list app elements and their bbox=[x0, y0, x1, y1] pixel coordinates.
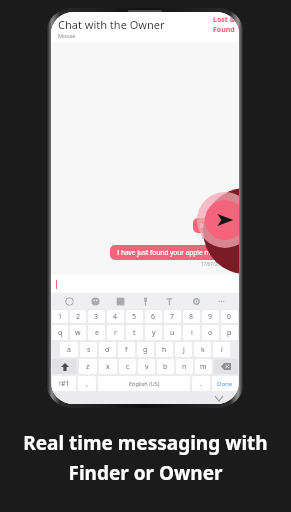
button[interactable]: i bbox=[183, 325, 200, 340]
button[interactable]: t bbox=[126, 325, 143, 340]
button[interactable]: x bbox=[99, 359, 117, 374]
button[interactable]: I have just found your apple mouse bbox=[110, 245, 233, 260]
staticText: Finder or Owner bbox=[68, 460, 223, 486]
button[interactable]: 0 bbox=[221, 310, 238, 323]
staticText: y bbox=[152, 328, 156, 338]
button[interactable]: 3 bbox=[88, 310, 105, 323]
button[interactable]: s bbox=[80, 342, 97, 357]
button[interactable]: 9 bbox=[202, 310, 219, 323]
button[interactable]: b bbox=[157, 359, 174, 374]
staticText: d bbox=[105, 345, 110, 355]
button[interactable]: l bbox=[213, 342, 230, 357]
staticText: u bbox=[170, 328, 175, 338]
staticText: hi there! bbox=[200, 221, 226, 230]
button[interactable]: 2 bbox=[70, 310, 86, 323]
staticText: v bbox=[145, 362, 149, 372]
staticText: h bbox=[162, 345, 167, 355]
button[interactable]: English (US) bbox=[98, 376, 190, 391]
button[interactable]: j bbox=[175, 342, 192, 357]
staticText: Lost & bbox=[213, 15, 235, 25]
button[interactable]: p bbox=[221, 325, 238, 340]
staticText: c bbox=[126, 362, 130, 372]
staticText: . bbox=[200, 379, 202, 389]
staticText: 4 bbox=[113, 312, 118, 322]
button[interactable]: , bbox=[78, 376, 96, 391]
staticText: r bbox=[114, 328, 117, 338]
button[interactable]: w bbox=[70, 325, 86, 340]
button[interactable]: Shift bbox=[52, 359, 77, 374]
staticText: j bbox=[183, 345, 185, 355]
staticText: 0 bbox=[227, 312, 232, 322]
button[interactable]: Backspace bbox=[214, 359, 238, 374]
staticText: g bbox=[143, 345, 148, 355]
button[interactable]: 5 bbox=[126, 310, 143, 323]
button[interactable]: 6 bbox=[145, 310, 162, 323]
button[interactable]: 1 bbox=[52, 310, 68, 323]
staticText: 1 bbox=[58, 312, 63, 322]
staticText: w bbox=[75, 328, 81, 338]
button[interactable]: o bbox=[202, 325, 219, 340]
button[interactable]: Done bbox=[212, 376, 238, 391]
button[interactable]: 8 bbox=[183, 310, 200, 323]
staticText: m bbox=[200, 362, 207, 372]
button[interactable]: Keyboard tool bbox=[88, 294, 102, 308]
staticText: 17/07/20 09:24 bbox=[201, 261, 233, 267]
staticText: s bbox=[87, 345, 91, 355]
staticText: Done bbox=[217, 380, 233, 388]
button[interactable]: Send bbox=[205, 200, 239, 240]
button[interactable]: 4 bbox=[107, 310, 124, 323]
staticText: p bbox=[227, 328, 232, 338]
button[interactable]: u bbox=[164, 325, 181, 340]
button[interactable]: hi there! bbox=[193, 218, 233, 233]
staticText: Real time messaging with bbox=[23, 430, 268, 456]
staticText: k bbox=[201, 345, 205, 355]
staticText: i bbox=[191, 328, 193, 338]
button[interactable]: v bbox=[138, 359, 155, 374]
button[interactable]: g bbox=[137, 342, 154, 357]
staticText: f bbox=[125, 345, 128, 355]
staticText: e bbox=[95, 328, 99, 338]
staticText: n bbox=[182, 362, 187, 372]
button[interactable]: c bbox=[119, 359, 136, 374]
button[interactable]: n bbox=[176, 359, 193, 374]
staticText: 5 bbox=[132, 312, 137, 322]
staticText: o bbox=[208, 328, 213, 338]
staticText: z bbox=[86, 362, 90, 372]
button[interactable]: !#1 bbox=[52, 376, 76, 391]
staticText: a bbox=[67, 345, 71, 355]
staticText: !#1 bbox=[59, 379, 70, 389]
button[interactable]: f bbox=[118, 342, 135, 357]
button[interactable]: q bbox=[52, 325, 68, 340]
button[interactable]: Keyboard tool bbox=[62, 294, 76, 308]
button[interactable]: r bbox=[107, 325, 124, 340]
button[interactable]: y bbox=[145, 325, 162, 340]
button[interactable]: a bbox=[60, 342, 78, 357]
staticText: x bbox=[106, 362, 110, 372]
staticText: 8 bbox=[189, 312, 194, 322]
staticText: 6 bbox=[151, 312, 156, 322]
staticText: English (US) bbox=[129, 380, 160, 387]
button[interactable]: Keyboard tool bbox=[138, 294, 152, 308]
staticText: 3 bbox=[94, 312, 99, 322]
button[interactable]: e bbox=[88, 325, 105, 340]
staticText: t bbox=[133, 328, 136, 338]
button[interactable]: k bbox=[194, 342, 211, 357]
button[interactable]: z bbox=[79, 359, 97, 374]
staticText: l bbox=[221, 345, 223, 355]
staticText: q bbox=[58, 328, 63, 338]
staticText: b bbox=[163, 362, 168, 372]
button[interactable]: . bbox=[192, 376, 210, 391]
staticText: , bbox=[86, 379, 88, 389]
staticText: I have just found your apple mouse bbox=[117, 248, 226, 257]
button[interactable]: Keyboard tool bbox=[189, 294, 203, 308]
button[interactable]: Keyboard tool bbox=[163, 294, 177, 308]
staticText: 17/07/20 09:23 bbox=[201, 234, 233, 240]
button[interactable]: d bbox=[99, 342, 116, 357]
button[interactable]: h bbox=[156, 342, 173, 357]
button[interactable]: Keyboard tool bbox=[214, 294, 228, 308]
button[interactable]: 7 bbox=[164, 310, 181, 323]
button[interactable] bbox=[51, 275, 239, 293]
button[interactable]: m bbox=[195, 359, 212, 374]
button[interactable]: Keyboard tool bbox=[113, 294, 127, 308]
staticText: 7 bbox=[170, 312, 175, 322]
